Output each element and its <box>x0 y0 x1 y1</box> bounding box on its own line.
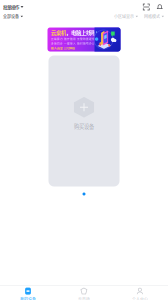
button[interactable]: 购买设备 <box>48 55 119 186</box>
button[interactable]: 云桌机 <box>47 27 120 51</box>
staticText: 云端算力 随开随用 无需购置硬件 <box>51 37 95 41</box>
staticText: ，电脑上线啦! <box>66 28 98 36</box>
staticText: 全部设备 <box>3 14 19 19</box>
button[interactable]: 个人中心 <box>112 286 168 300</box>
button[interactable]: 扫一扫 <box>143 4 149 10</box>
button[interactable]: 我的设备 <box>0 286 56 300</box>
button[interactable]: 全部设备 <box>3 14 23 19</box>
staticText: 小区域显示 <box>114 14 134 19</box>
staticText: 网格模式 <box>144 14 160 19</box>
button[interactable]: 云市场 <box>56 286 112 300</box>
button[interactable]: 消息 <box>156 4 163 10</box>
button[interactable]: 小区域显示 <box>114 14 138 19</box>
button[interactable]: 网格模式 <box>144 14 164 19</box>
staticText: 多端同步 一键接入 随时随地办公 <box>51 41 95 45</box>
staticText: 云市场 <box>78 296 90 300</box>
staticText: 批量操作 <box>3 4 19 10</box>
button[interactable]: 批量操作 <box>3 4 23 10</box>
staticText: 我的设备 <box>20 296 36 300</box>
staticText: 新人首单 1元体验 <box>51 46 75 50</box>
staticText: 云桌机 <box>51 28 66 36</box>
staticText: 个人中心 <box>132 296 148 300</box>
staticText: 购买设备 <box>74 122 94 130</box>
